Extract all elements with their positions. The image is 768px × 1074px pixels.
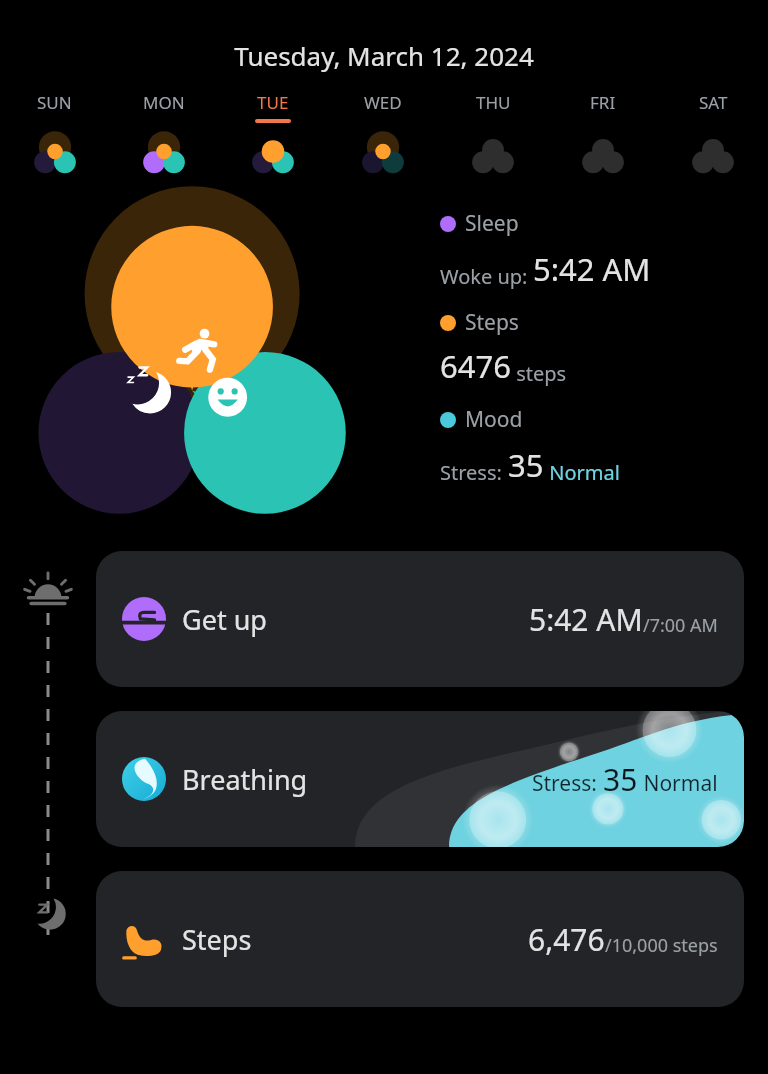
staticText: FRI (590, 91, 616, 114)
button[interactable]: SAT (658, 91, 768, 179)
staticText: 5:42 AM (533, 248, 651, 290)
staticText: steps (511, 360, 567, 387)
button[interactable] (37, 211, 367, 501)
staticText: 6,476 (528, 919, 605, 960)
staticText: Mood (465, 405, 523, 434)
staticText: 5:42 AM (529, 599, 643, 640)
button[interactable]: WED (328, 91, 438, 179)
staticText: SAT (699, 91, 728, 114)
staticText: THU (476, 91, 511, 114)
other: Bed time (24, 887, 72, 935)
other: Wake up time (24, 569, 72, 617)
staticText: Stress: (532, 769, 603, 798)
button[interactable]: Get up (96, 551, 744, 687)
staticText: Normal (544, 459, 620, 486)
staticText: Woke up: (440, 263, 533, 290)
staticText: 35 (508, 444, 544, 486)
button[interactable]: Steps (96, 871, 744, 1007)
staticText: /7:00 AM (643, 613, 718, 638)
staticText: Get up (182, 601, 267, 638)
button[interactable]: FRI (548, 91, 658, 179)
staticText: WED (364, 91, 402, 114)
staticText: /10,000 steps (605, 933, 718, 958)
staticText: Sleep (465, 209, 519, 238)
staticText: MON (143, 91, 185, 114)
staticText: Steps (182, 921, 252, 958)
button[interactable]: TUE (218, 91, 328, 179)
button[interactable]: MON (109, 91, 218, 179)
staticText: Normal (638, 769, 718, 798)
button[interactable]: Breathing (96, 711, 744, 847)
staticText: Stress: (440, 459, 508, 486)
staticText: Breathing (182, 761, 308, 798)
staticText: SUN (37, 91, 72, 114)
staticText: TUE (257, 91, 289, 114)
button[interactable]: SUN (0, 91, 109, 179)
staticText: 35 (603, 759, 638, 800)
staticText: 6476 (440, 345, 511, 387)
staticText: Steps (465, 308, 519, 337)
button[interactable]: THU (438, 91, 548, 179)
staticText: Tuesday, March 12, 2024 (0, 38, 768, 73)
